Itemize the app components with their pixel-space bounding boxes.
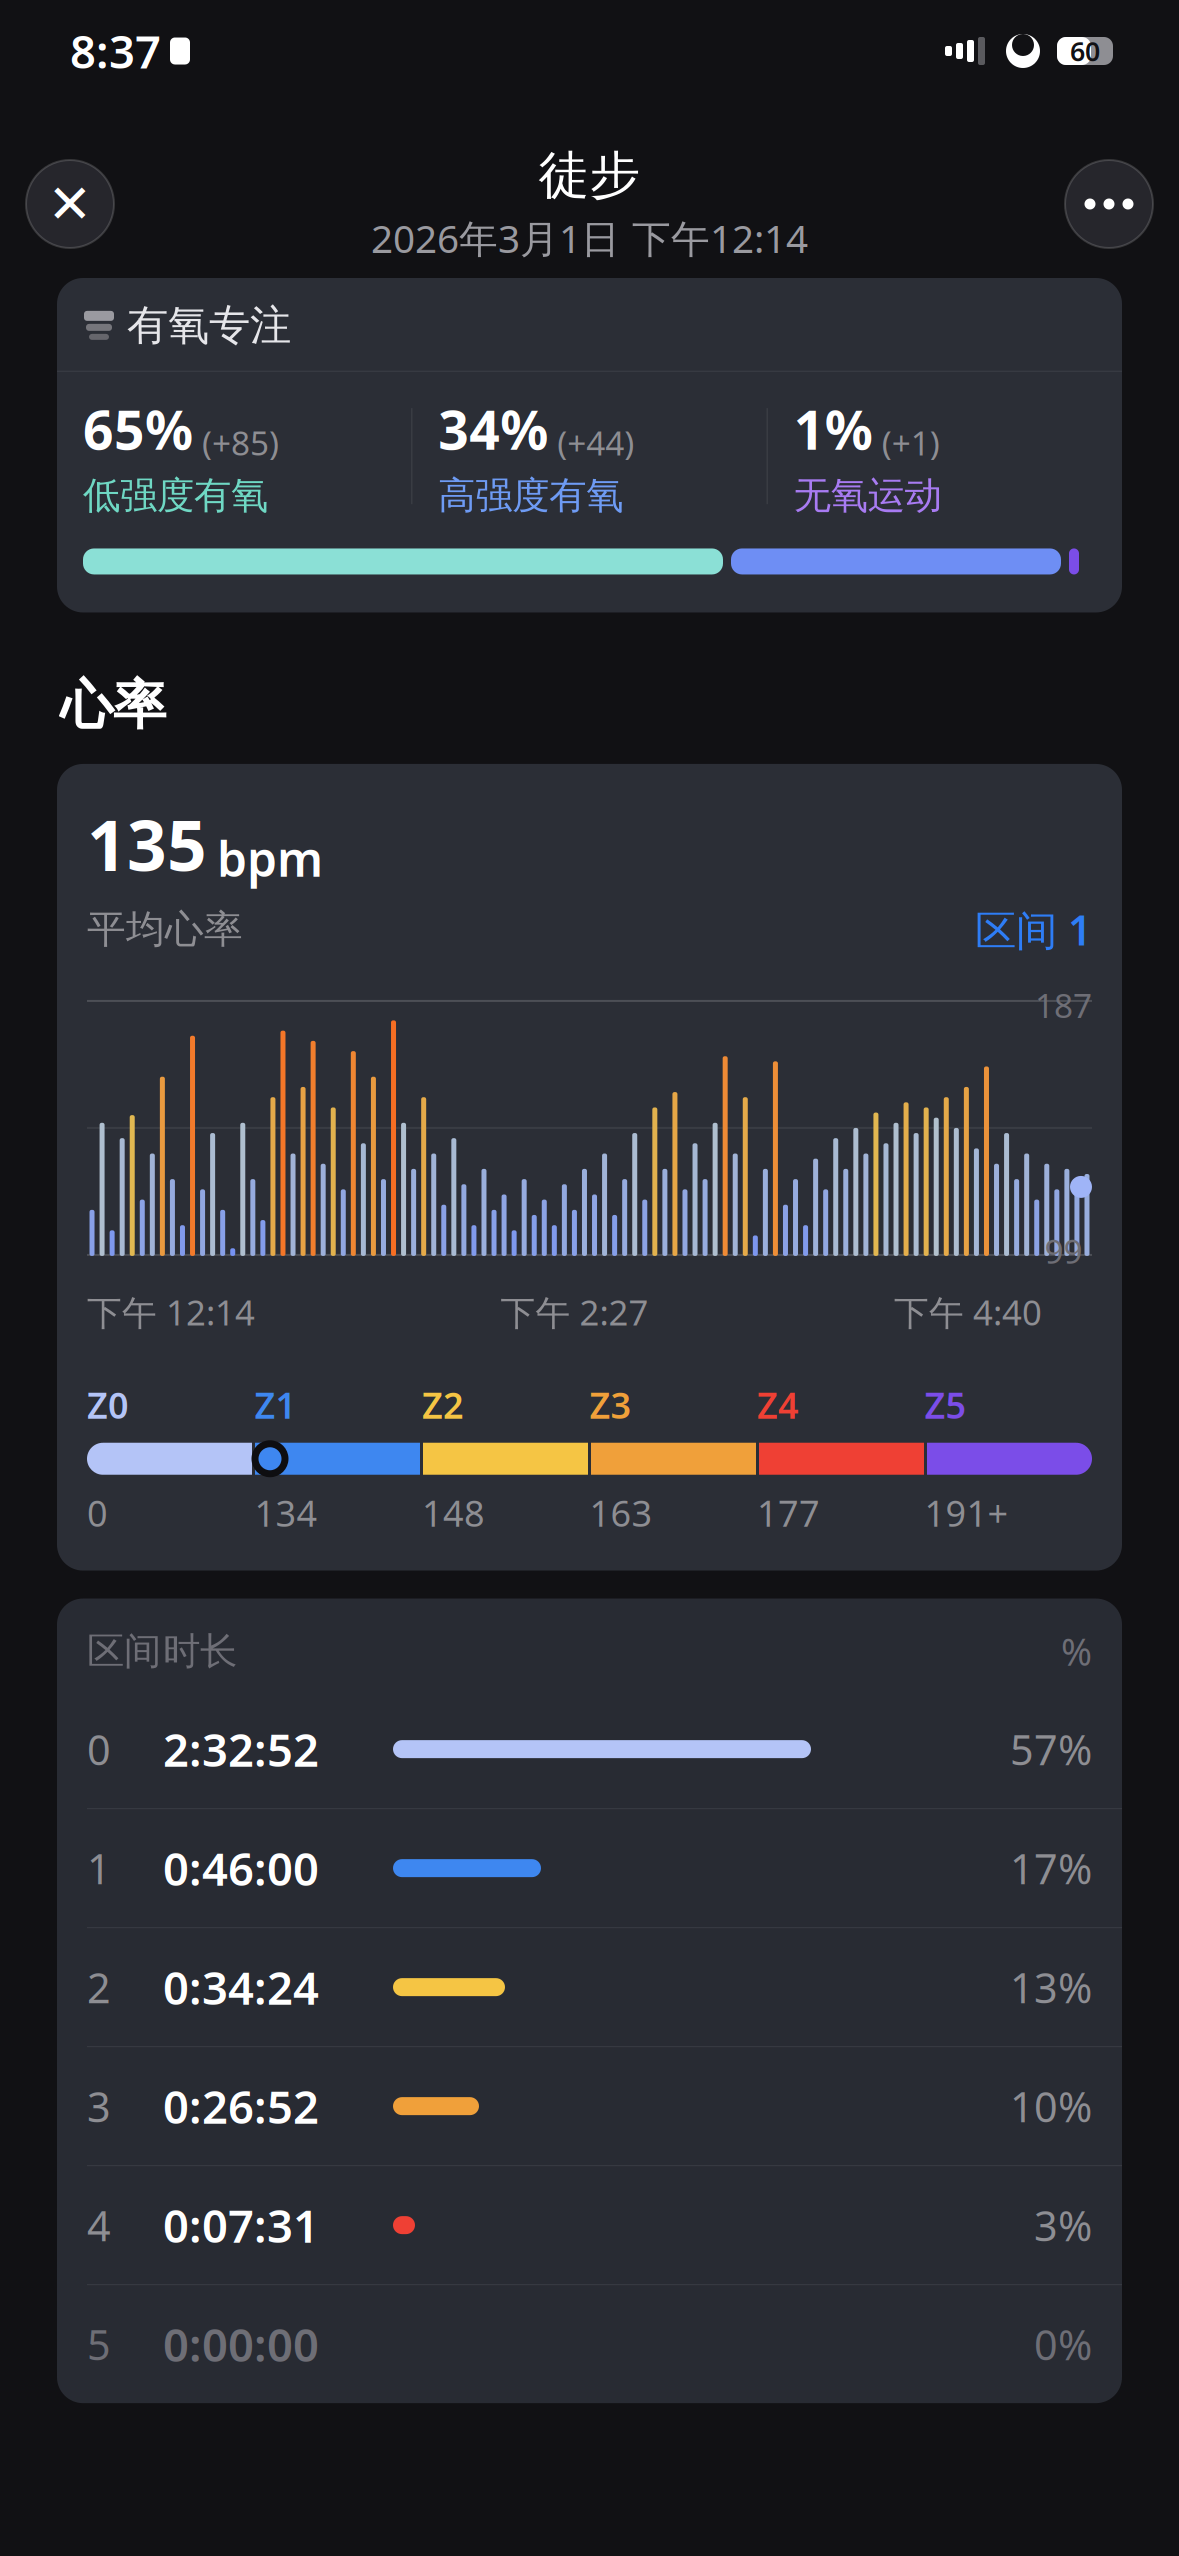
- staticText: 0:46:00: [163, 1838, 319, 1898]
- staticText: 0:34:24: [163, 1957, 319, 2017]
- staticText: 60: [1070, 33, 1100, 69]
- staticText: 下午 2:27: [500, 1289, 648, 1335]
- staticText: 2: [87, 1960, 111, 2015]
- button[interactable]: 5: [57, 2285, 1122, 2403]
- button[interactable]: 更多: [1065, 160, 1153, 248]
- staticText: 低强度有氧: [83, 473, 268, 518]
- staticText: 有氧专注: [127, 300, 291, 351]
- staticText: 0: [87, 1722, 111, 1777]
- staticText: Z4: [757, 1381, 799, 1429]
- staticText: ✕: [47, 174, 92, 234]
- staticText: 4: [87, 2198, 111, 2253]
- staticText: 2:32:52: [163, 1719, 319, 1779]
- staticText: 0:26:52: [163, 2076, 319, 2136]
- staticText: (+85): [202, 420, 279, 465]
- staticText: 34%: [438, 394, 548, 465]
- staticText: 0:00:00: [163, 2314, 319, 2374]
- button[interactable]: 关闭: [26, 160, 114, 248]
- staticText: Z3: [589, 1381, 631, 1429]
- staticText: 135: [87, 798, 207, 890]
- staticText: 高强度有氧: [438, 473, 623, 518]
- staticText: 10%: [1010, 2079, 1092, 2134]
- staticText: 177: [757, 1489, 820, 1537]
- staticText: 无氧运动: [794, 473, 942, 518]
- staticText: 5: [87, 2317, 111, 2372]
- button[interactable]: 0: [57, 1690, 1122, 1808]
- staticText: 17%: [1010, 1841, 1092, 1896]
- staticText: 0%: [1034, 2317, 1092, 2372]
- button[interactable]: 4: [57, 2166, 1122, 2284]
- staticText: 区间 1: [975, 902, 1092, 957]
- staticText: %: [1061, 1627, 1092, 1676]
- staticText: 1: [87, 1841, 111, 1896]
- staticText: 13%: [1010, 1960, 1092, 2015]
- staticText: 区间: [87, 1628, 161, 1674]
- staticText: 99: [1044, 1229, 1082, 1273]
- staticText: 57%: [1010, 1722, 1092, 1777]
- staticText: 1%: [794, 394, 873, 465]
- staticText: Z0: [87, 1381, 129, 1429]
- button[interactable]: 2: [57, 1928, 1122, 2046]
- button[interactable]: 区间 1: [975, 902, 1092, 957]
- staticText: 187: [1035, 983, 1092, 1027]
- button[interactable]: 3: [57, 2047, 1122, 2165]
- staticText: 3%: [1034, 2198, 1092, 2253]
- staticText: 0: [87, 1489, 108, 1537]
- staticText: 2026年3月1日 下午12:14: [371, 212, 808, 264]
- staticText: 0:07:31: [163, 2195, 319, 2255]
- staticText: 下午 12:14: [87, 1289, 255, 1335]
- staticText: 平均心率: [87, 906, 243, 953]
- staticText: 65%: [83, 394, 193, 465]
- staticText: 134: [254, 1489, 317, 1537]
- staticText: 徒步: [538, 144, 640, 206]
- staticText: (+1): [882, 420, 940, 465]
- staticText: Z1: [254, 1381, 296, 1429]
- staticText: Z5: [924, 1381, 966, 1429]
- staticText: 下午 4:40: [894, 1289, 1042, 1335]
- staticText: bpm: [217, 826, 323, 890]
- staticText: Z2: [422, 1381, 464, 1429]
- staticText: 3: [87, 2079, 111, 2134]
- staticText: 8:37: [70, 21, 161, 81]
- staticText: 心率: [60, 672, 166, 738]
- staticText: 163: [589, 1489, 652, 1537]
- button[interactable]: 1: [57, 1809, 1122, 1927]
- staticText: (+44): [557, 420, 634, 465]
- staticText: 191+: [924, 1489, 1008, 1537]
- staticText: 时长: [163, 1628, 237, 1674]
- staticText: 148: [422, 1489, 485, 1537]
